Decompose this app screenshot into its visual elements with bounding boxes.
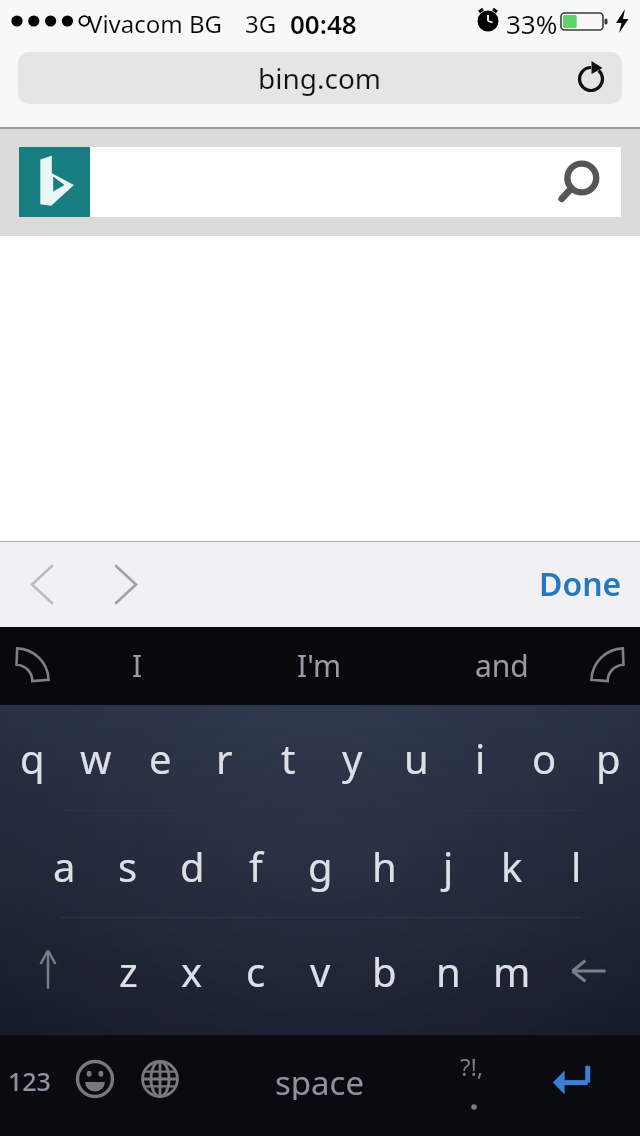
staticText: 123 bbox=[8, 1064, 51, 1098]
button[interactable]: e bbox=[130, 724, 190, 792]
button[interactable]: o bbox=[514, 724, 574, 792]
button[interactable] bbox=[116, 566, 136, 603]
button[interactable]: ?!, bbox=[460, 1050, 484, 1083]
button[interactable]: q bbox=[2, 724, 62, 792]
staticText: and bbox=[475, 645, 529, 686]
staticText: k bbox=[501, 839, 523, 893]
staticText: e bbox=[149, 731, 172, 785]
staticText: y bbox=[342, 731, 363, 785]
button[interactable]: n bbox=[418, 937, 478, 1005]
button[interactable]: j bbox=[418, 832, 478, 900]
button[interactable] bbox=[571, 958, 607, 984]
button[interactable]: a bbox=[34, 832, 94, 900]
button[interactable]: space bbox=[270, 1060, 370, 1100]
staticText: d bbox=[180, 839, 205, 893]
staticText: x bbox=[181, 944, 203, 998]
staticText: t bbox=[281, 731, 296, 785]
staticText: m bbox=[493, 944, 531, 998]
button[interactable]: u bbox=[386, 724, 446, 792]
button[interactable] bbox=[38, 948, 58, 990]
staticText: Done bbox=[539, 562, 622, 606]
button[interactable] bbox=[552, 1064, 594, 1094]
button[interactable]: r bbox=[194, 724, 254, 792]
button[interactable]: and bbox=[472, 635, 532, 695]
button[interactable]: l bbox=[546, 832, 606, 900]
button[interactable]: m bbox=[482, 937, 542, 1005]
staticText: q bbox=[20, 731, 45, 785]
staticText: i bbox=[475, 731, 486, 785]
button[interactable]: z bbox=[98, 937, 158, 1005]
button[interactable]: c bbox=[226, 937, 286, 1005]
button[interactable]: b bbox=[354, 937, 414, 1005]
button[interactable]: d bbox=[162, 832, 222, 900]
staticText: ?!, bbox=[460, 1050, 484, 1083]
button[interactable]: v bbox=[290, 937, 350, 1005]
staticText: j bbox=[443, 839, 454, 893]
staticText: c bbox=[246, 944, 266, 998]
button[interactable]: 123 bbox=[8, 1064, 51, 1098]
staticText: w bbox=[80, 731, 112, 785]
button[interactable] bbox=[141, 1060, 179, 1098]
button[interactable]: k bbox=[482, 832, 542, 900]
staticText: I'm bbox=[297, 645, 342, 686]
button[interactable]: i bbox=[450, 724, 510, 792]
button[interactable]: bing.com bbox=[18, 52, 622, 104]
staticText: p bbox=[596, 731, 621, 785]
staticText: f bbox=[249, 839, 263, 893]
staticText: v bbox=[310, 944, 331, 998]
staticText: Vivacom BG bbox=[88, 7, 223, 40]
button[interactable]: y bbox=[322, 724, 382, 792]
staticText: z bbox=[119, 944, 138, 998]
staticText: l bbox=[571, 839, 582, 893]
staticText: 00:48 bbox=[290, 6, 357, 41]
button[interactable]: p bbox=[578, 724, 638, 792]
staticText: r bbox=[216, 731, 233, 785]
staticText: n bbox=[436, 944, 461, 998]
staticText: o bbox=[532, 731, 557, 785]
button[interactable] bbox=[19, 147, 621, 217]
staticText: u bbox=[404, 731, 429, 785]
staticText: b bbox=[372, 944, 397, 998]
button[interactable] bbox=[32, 566, 52, 603]
button[interactable]: x bbox=[162, 937, 222, 1005]
staticText: a bbox=[53, 839, 76, 893]
staticText: h bbox=[372, 839, 397, 893]
staticText: s bbox=[118, 839, 138, 893]
button[interactable] bbox=[76, 1060, 114, 1098]
button[interactable]: I'm bbox=[289, 635, 349, 695]
button[interactable]: Done bbox=[539, 562, 622, 606]
staticText: 33% bbox=[506, 6, 558, 41]
staticText: g bbox=[308, 839, 333, 893]
staticText: I bbox=[132, 645, 143, 686]
button[interactable]: f bbox=[226, 832, 286, 900]
button[interactable]: g bbox=[290, 832, 350, 900]
button[interactable]: t bbox=[258, 724, 318, 792]
staticText: bing.com bbox=[258, 59, 382, 97]
button[interactable]: I bbox=[107, 635, 167, 695]
button[interactable]: h bbox=[354, 832, 414, 900]
button[interactable]: w bbox=[66, 724, 126, 792]
staticText: 3G bbox=[245, 7, 277, 40]
staticText: space bbox=[275, 1060, 365, 1100]
button[interactable]: s bbox=[98, 832, 158, 900]
